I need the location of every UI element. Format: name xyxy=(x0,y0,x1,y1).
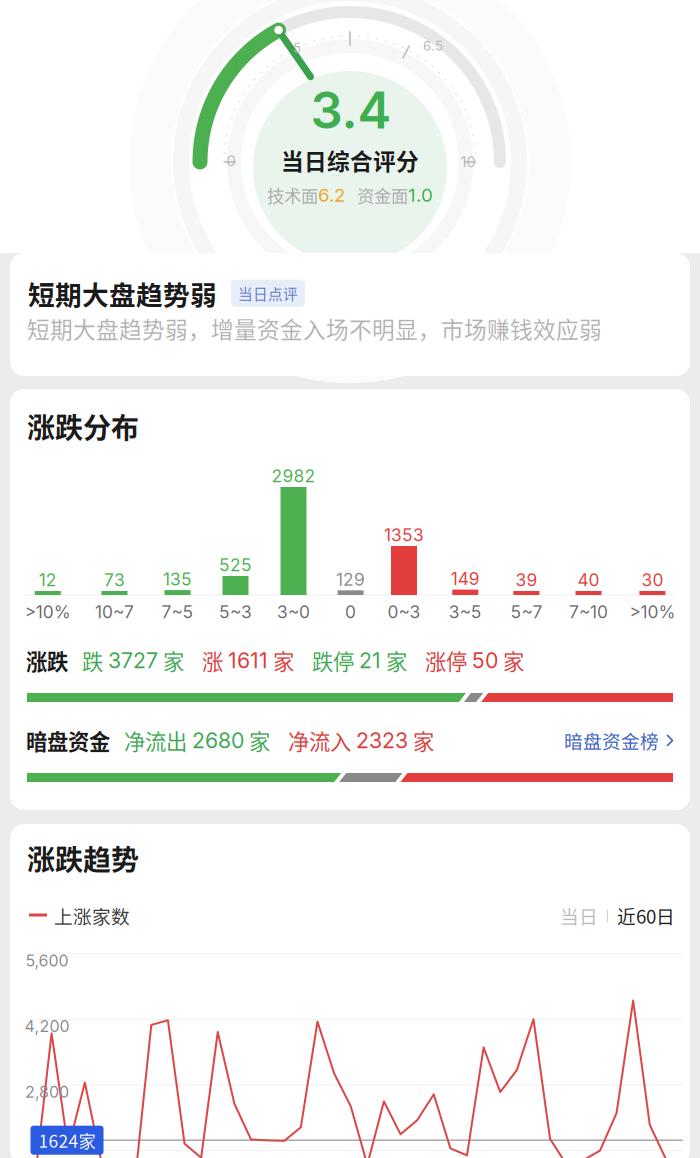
staticText: 10~7 xyxy=(95,601,134,622)
staticText: 家 xyxy=(413,725,434,756)
staticText: 当日综合评分 xyxy=(281,144,419,176)
staticText: 12 xyxy=(39,569,57,590)
staticText: 6.2 xyxy=(318,184,345,206)
staticText: 135 xyxy=(163,569,192,590)
staticText: 5 xyxy=(293,40,301,56)
staticText: 39 xyxy=(515,569,537,590)
staticText: 1611 xyxy=(228,647,268,673)
staticText: 1353 xyxy=(384,524,424,545)
staticText: 129 xyxy=(336,569,365,590)
staticText: 73 xyxy=(104,569,125,590)
staticText: 6.5 xyxy=(423,38,443,54)
staticText: 当日点评 xyxy=(238,283,298,304)
staticText: 家 xyxy=(386,645,407,676)
staticText: >10% xyxy=(629,601,675,622)
staticText: 3727 xyxy=(108,647,158,673)
staticText: 40 xyxy=(577,569,599,590)
staticText: 2680 xyxy=(192,727,244,753)
staticText: 净流出 xyxy=(124,725,187,756)
staticText: 跌停 xyxy=(312,645,354,676)
staticText: 5~3 xyxy=(219,601,252,622)
staticText: 3~0 xyxy=(277,601,310,622)
button[interactable]: 近60日 xyxy=(617,902,675,929)
staticText: 短期大盘趋势弱 xyxy=(28,274,217,313)
staticText: 2323 xyxy=(356,727,408,753)
staticText: 30 xyxy=(641,569,663,590)
staticText: 当日 xyxy=(560,902,598,929)
staticText: 家 xyxy=(163,645,184,676)
staticText: 4,200 xyxy=(24,1017,69,1036)
staticText: 涨跌 xyxy=(26,645,68,676)
staticText: 10 xyxy=(460,153,475,171)
staticText: 525 xyxy=(219,554,252,575)
staticText: 3~5 xyxy=(449,601,482,622)
staticText: 家 xyxy=(273,645,294,676)
staticText: 2982 xyxy=(271,465,315,486)
staticText: 涨停 xyxy=(425,645,467,676)
staticText: 2,800 xyxy=(25,1082,69,1102)
staticText: 家 xyxy=(503,645,524,676)
staticText: 0 xyxy=(345,601,356,622)
staticText: 涨 xyxy=(202,645,223,676)
staticText: 0 xyxy=(226,152,235,170)
staticText: 上涨家数 xyxy=(54,902,130,929)
staticText: >10% xyxy=(25,601,71,622)
staticText: 技术面 xyxy=(267,182,318,208)
staticText: 净流入 xyxy=(288,725,351,756)
staticText: 家 xyxy=(249,725,270,756)
staticText: 涨跌分布 xyxy=(27,406,139,446)
staticText: 短期大盘趋势弱，增量资金入场不明显，市场赚钱效应弱 xyxy=(27,312,602,345)
staticText: 149 xyxy=(451,568,480,589)
staticText: 3.4 xyxy=(310,79,391,141)
staticText: 21 xyxy=(359,647,381,673)
staticText: 涨跌趋势 xyxy=(27,838,139,878)
staticText: 7~10 xyxy=(569,601,608,622)
staticText: 1.0 xyxy=(408,184,433,206)
staticText: 跌 xyxy=(82,645,103,676)
staticText: 近60日 xyxy=(617,902,675,929)
staticText: 资金面 xyxy=(357,182,408,208)
staticText: 暗盘资金榜 xyxy=(564,727,659,754)
staticText: 7~5 xyxy=(161,601,193,622)
staticText: 50 xyxy=(472,647,498,673)
staticText: 暗盘资金 xyxy=(26,725,110,756)
button[interactable]: 暗盘资金榜 xyxy=(564,727,674,754)
staticText: 5~7 xyxy=(510,601,542,622)
staticText: 0~3 xyxy=(387,601,420,622)
staticText: 5,600 xyxy=(25,951,68,970)
button[interactable]: 当日 xyxy=(560,902,598,929)
staticText: 1624家 xyxy=(38,1128,95,1153)
